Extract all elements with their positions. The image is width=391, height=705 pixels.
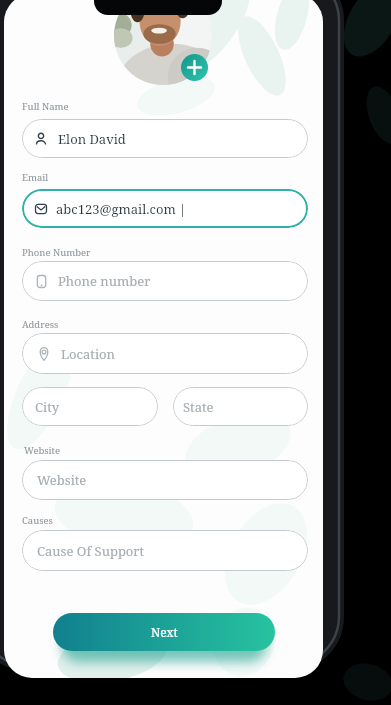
staticText: Email xyxy=(22,171,49,184)
button[interactable]: Location xyxy=(22,333,308,374)
staticText: Phone number xyxy=(58,272,151,290)
button[interactable] xyxy=(181,54,208,81)
staticText: City xyxy=(35,398,60,416)
staticText: Elon David xyxy=(58,130,126,148)
staticText: Website xyxy=(37,471,87,489)
button[interactable]: Next xyxy=(53,613,275,651)
staticText: Full Name xyxy=(22,100,69,113)
staticText: Address xyxy=(22,318,59,331)
button[interactable]: State xyxy=(173,387,308,426)
button[interactable]: City xyxy=(22,387,158,426)
button[interactable]: Elon David xyxy=(22,119,308,158)
staticText: abc123@gmail.com | xyxy=(56,200,187,218)
staticText: Causes xyxy=(22,514,53,527)
button[interactable]: Phone number xyxy=(22,261,308,301)
staticText: Website xyxy=(24,444,61,457)
button[interactable]: Website xyxy=(22,460,308,500)
button[interactable]: Cause Of Support xyxy=(22,530,308,571)
staticText: Phone Number xyxy=(22,246,91,259)
staticText: Next xyxy=(151,624,178,640)
button[interactable] xyxy=(114,0,212,85)
button[interactable]: abc123@gmail.com | xyxy=(22,189,308,228)
staticText: State xyxy=(183,398,214,416)
staticText: Cause Of Support xyxy=(37,542,145,560)
staticText: Location xyxy=(61,345,115,363)
